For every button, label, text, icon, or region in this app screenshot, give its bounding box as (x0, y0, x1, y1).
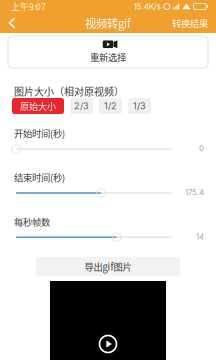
staticText: 转换结果 (172, 16, 208, 30)
staticText: 视频转gif (85, 15, 131, 31)
button[interactable]: 重新选择 (8, 36, 208, 68)
button[interactable]: 1/2 (99, 98, 122, 114)
staticText: 上午9:07 (11, 0, 46, 13)
staticText: 导出gif图片 (84, 260, 131, 273)
staticText: 175.4 (185, 187, 204, 197)
staticText: 结束时间(秒) (14, 170, 65, 184)
staticText: 0 (199, 143, 204, 153)
staticText: 原始大小 (20, 99, 56, 112)
button[interactable]: 返回 (0, 13, 24, 33)
staticText: 2/3 (74, 100, 89, 111)
staticText: 重新选择 (90, 50, 126, 64)
staticText: 15.4K/s (134, 2, 161, 11)
button[interactable]: 转换结果 (164, 13, 216, 33)
staticText: 1/2 (104, 100, 117, 111)
button[interactable]: 原始大小 (12, 98, 64, 114)
button[interactable]: 导出gif图片 (36, 257, 180, 276)
staticText: 1/3 (133, 100, 146, 111)
staticText: 每秒帧数 (14, 215, 50, 228)
button[interactable]: 1/3 (128, 98, 151, 114)
staticText: 开始时间(秒) (14, 126, 65, 140)
staticText: 图片大小（相对原视频） (14, 84, 124, 98)
staticText: 14 (196, 232, 204, 241)
button[interactable]: 2/3 (70, 98, 93, 114)
